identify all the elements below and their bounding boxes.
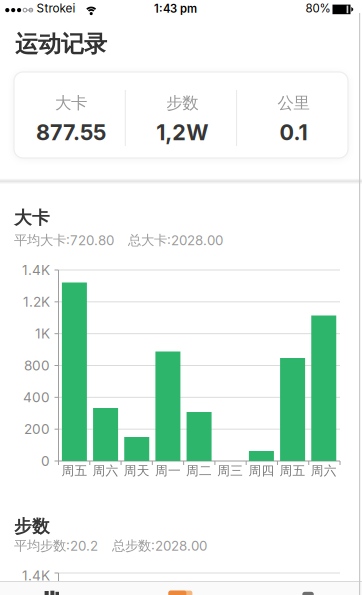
staticText: 1,2W: [156, 120, 208, 145]
staticText: 400: [23, 389, 50, 405]
staticText: 周天: [124, 463, 150, 478]
staticText: 1.2K: [23, 294, 50, 310]
staticText: 平均大卡:720.80: [14, 232, 114, 248]
staticText: 周四: [248, 463, 274, 478]
staticText: 运动记录: [15, 30, 107, 58]
staticText: Strokei: [36, 1, 75, 15]
staticText: 1:43 pm: [154, 2, 197, 15]
staticText: 1K: [35, 326, 50, 342]
button[interactable]: 运动: [120, 582, 241, 595]
staticText: 大卡: [14, 207, 50, 229]
staticText: 步数: [14, 515, 50, 537]
staticText: 1.4K: [22, 262, 50, 278]
staticText: 周五: [61, 463, 87, 478]
staticText: 总大卡:2028.00: [128, 232, 223, 248]
staticText: 1.4K: [22, 567, 50, 583]
staticText: 周一: [155, 463, 181, 478]
staticText: 平均步数:20.2: [14, 537, 98, 554]
staticText: 周五: [280, 463, 306, 478]
staticText: 0: [41, 453, 50, 469]
staticText: 80%: [305, 1, 330, 15]
staticText: 步数: [166, 93, 198, 113]
staticText: 大卡: [55, 93, 87, 113]
staticText: 周三: [217, 463, 243, 478]
staticText: 800: [24, 357, 50, 373]
staticText: 周六: [93, 463, 119, 478]
staticText: 总步数:2028.00: [112, 537, 207, 554]
button[interactable]: 统计: [0, 582, 120, 595]
button[interactable]: 我的: [241, 582, 362, 595]
staticText: 周六: [311, 463, 337, 478]
staticText: 周二: [186, 463, 212, 478]
staticText: 0.1: [280, 120, 308, 145]
staticText: 877.55: [36, 120, 106, 145]
staticText: 200: [24, 421, 50, 437]
staticText: 公里: [278, 93, 310, 113]
